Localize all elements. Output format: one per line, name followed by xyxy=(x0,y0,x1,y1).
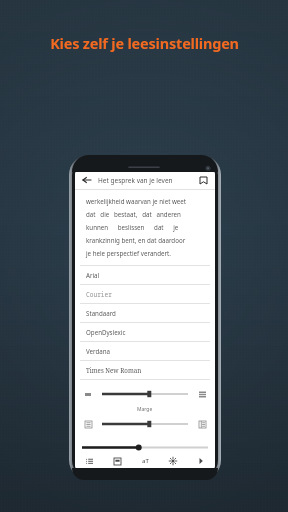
button[interactable]: Voortgang xyxy=(82,442,208,453)
button[interactable]: Arial xyxy=(80,266,210,284)
button[interactable]: Kleiner xyxy=(82,388,94,400)
staticText: kunnen beslissen dat je xyxy=(86,223,179,231)
button[interactable]: Afspelen xyxy=(193,453,209,469)
button[interactable]: Lettergrootte xyxy=(137,453,153,469)
staticText: aT xyxy=(142,457,149,465)
button[interactable]: Schuifregelaar xyxy=(102,388,188,400)
staticText: Courier xyxy=(86,290,112,298)
button[interactable]: Times New Roman xyxy=(80,361,210,379)
button[interactable]: Notitie xyxy=(109,453,125,469)
staticText: Times New Roman xyxy=(86,366,142,374)
button[interactable]: Standaard xyxy=(80,304,210,322)
button[interactable]: Bladwijzer xyxy=(196,173,210,187)
staticText: Het gesprek van je leven xyxy=(98,176,173,185)
button[interactable]: Helderheid xyxy=(165,453,181,469)
button[interactable]: Terug xyxy=(80,173,94,187)
button[interactable]: Courier xyxy=(80,285,210,303)
button[interactable]: Groter xyxy=(196,418,208,430)
button[interactable]: Schuifregelaar xyxy=(102,418,188,430)
button[interactable]: Kleiner xyxy=(82,418,94,430)
button[interactable]: Verdana xyxy=(80,342,210,360)
button[interactable]: OpenDyslexic xyxy=(80,323,210,341)
button[interactable]: Inhoudsopgave xyxy=(81,453,97,469)
staticText: OpenDyslexic xyxy=(86,328,126,336)
staticText: Kies zelf je leesinstellingen xyxy=(50,33,239,53)
button[interactable]: Groter xyxy=(196,388,208,400)
staticText: dat die bestaat, dat anderen xyxy=(86,210,181,218)
staticText: Verdana xyxy=(86,347,111,355)
staticText: krankzinnig bent, en dat daardoor xyxy=(86,236,186,244)
staticText: Standaard xyxy=(86,309,116,317)
staticText: werkelijkheid waarvan je niet weet xyxy=(86,197,187,205)
staticText: Marge xyxy=(137,406,153,413)
staticText: je hele perspectief verandert. xyxy=(86,249,171,257)
staticText: Arial xyxy=(86,271,100,279)
